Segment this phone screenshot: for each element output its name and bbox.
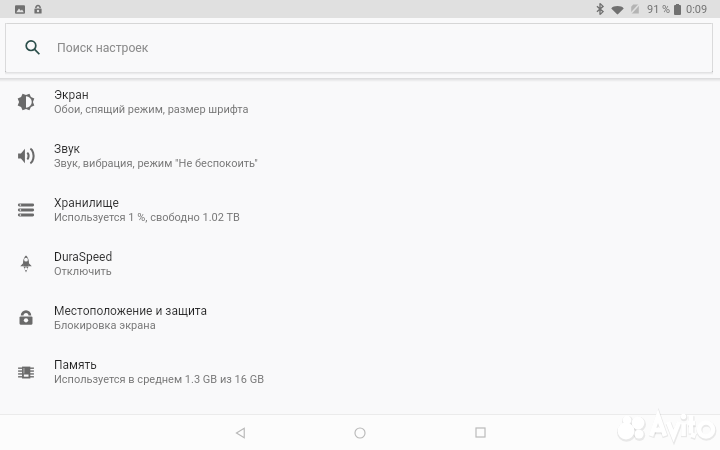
staticText: 91 % (647, 3, 671, 16)
button[interactable]: Поиск настроек (6, 23, 712, 72)
staticText: Звук (54, 142, 81, 156)
button[interactable]: Память (0, 345, 720, 399)
button[interactable]: Хранилище (0, 183, 720, 237)
staticText: 0:09 (686, 3, 708, 16)
staticText: Блокировка экрана (54, 319, 156, 332)
button[interactable]: Recents (450, 415, 510, 450)
button[interactable]: Звук (0, 129, 720, 183)
staticText: Местоположение и защита (54, 304, 208, 318)
staticText: Обои, спящий режим, размер шрифта (54, 103, 249, 116)
button[interactable]: Home (330, 415, 390, 450)
staticText: Память (54, 358, 97, 372)
staticText: Поиск настроек (57, 41, 149, 55)
staticText: Экран (54, 88, 89, 102)
staticText: Используется в среднем 1.3 GB из 16 GB (54, 373, 265, 386)
staticText: Звук, вибрация, режим "Не беспокоить" (54, 157, 258, 170)
button[interactable]: DuraSpeed (0, 237, 720, 291)
staticText: Отключить (54, 265, 112, 278)
button[interactable]: Back (210, 415, 270, 450)
staticText: Используется 1 %, свободно 1.02 ТВ (54, 211, 240, 224)
staticText: Хранилище (54, 196, 119, 210)
staticText: DuraSpeed (54, 250, 113, 264)
button[interactable]: Экран (0, 75, 720, 129)
button[interactable]: Местоположение и защита (0, 291, 720, 345)
